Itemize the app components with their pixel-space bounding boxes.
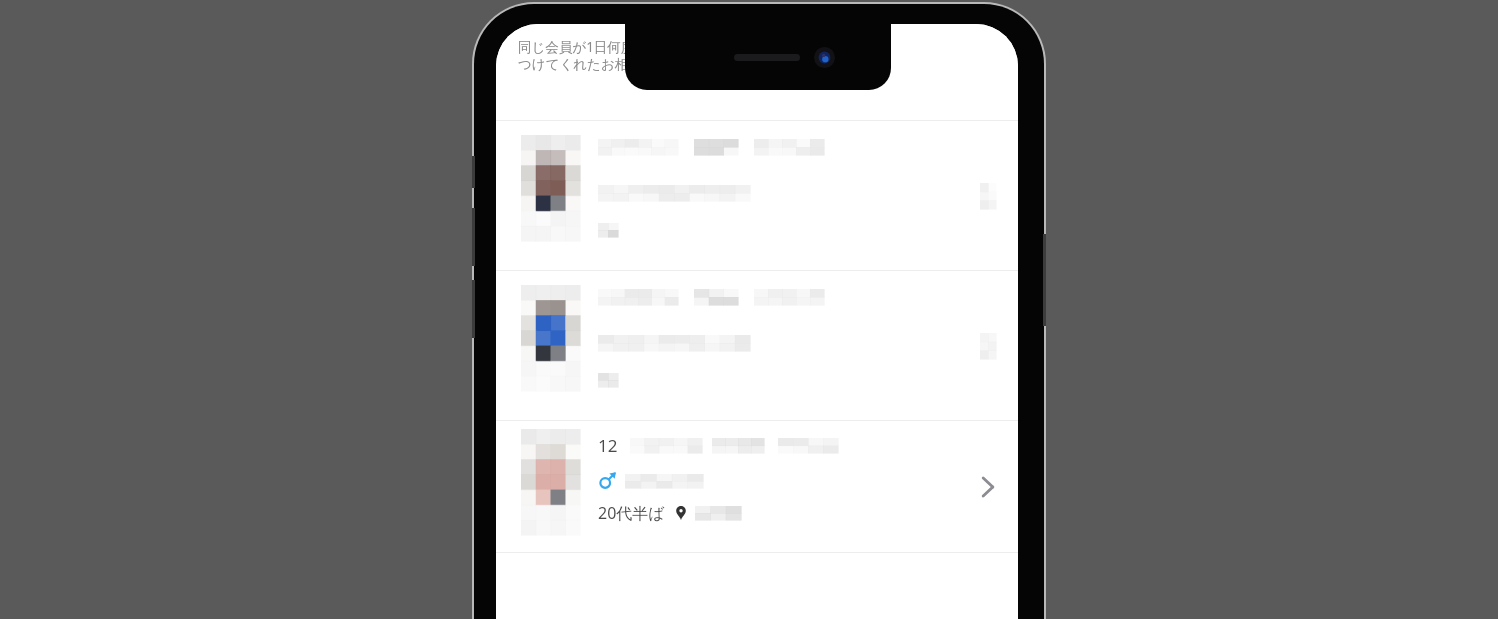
button[interactable] — [496, 121, 1018, 270]
staticText: 同じ会員が1日何度訪問してもカウントされます。足あとを — [518, 38, 882, 56]
staticText: つけてくれたお相手を確認しましょう。 — [518, 56, 766, 73]
button[interactable]: 12 — [496, 421, 1018, 552]
staticText: 12 — [598, 434, 618, 457]
button[interactable] — [496, 271, 1018, 420]
staticText: 20代半ば — [598, 502, 665, 524]
button[interactable]: Open profile — [966, 465, 1010, 509]
